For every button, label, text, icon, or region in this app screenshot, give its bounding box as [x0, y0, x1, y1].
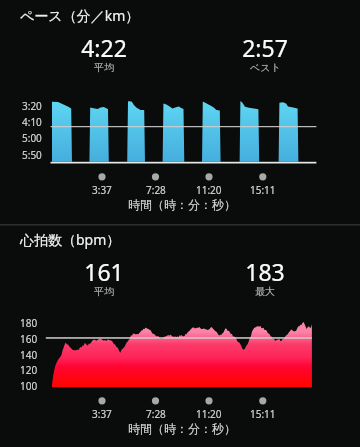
- staticText: 7:28: [146, 407, 166, 421]
- staticText: 3:20: [22, 99, 42, 113]
- staticText: 161: [84, 256, 124, 287]
- staticText: 160: [20, 332, 38, 346]
- staticText: 時間（時：分：秒）: [128, 421, 236, 436]
- staticText: 平均: [94, 285, 114, 298]
- staticText: 180: [20, 316, 38, 330]
- staticText: 4:10: [22, 115, 42, 129]
- staticText: 15:11: [250, 407, 276, 421]
- staticText: 120: [20, 363, 38, 377]
- staticText: 5:50: [22, 148, 42, 162]
- staticText: 15:11: [250, 183, 276, 197]
- button[interactable]: 4:22: [44, 32, 164, 76]
- staticText: 3:37: [92, 407, 112, 421]
- staticText: 平均: [94, 61, 114, 74]
- staticText: 心拍数（bpm）: [20, 230, 121, 249]
- staticText: 3:37: [92, 183, 112, 197]
- button[interactable]: 2:57: [205, 32, 325, 76]
- staticText: 140: [20, 348, 38, 362]
- button[interactable]: 161: [44, 256, 164, 300]
- staticText: ペース（分／km）: [20, 6, 140, 25]
- staticText: 11:20: [196, 183, 222, 197]
- staticText: 100: [20, 379, 38, 393]
- staticText: 183: [245, 256, 285, 287]
- staticText: 2:57: [242, 32, 288, 63]
- button[interactable]: 183: [205, 256, 325, 300]
- staticText: 最大: [255, 285, 275, 298]
- staticText: 4:22: [81, 32, 127, 63]
- staticText: 5:00: [22, 131, 42, 145]
- staticText: ベスト: [250, 61, 281, 74]
- staticText: 11:20: [196, 407, 222, 421]
- staticText: 7:28: [146, 183, 166, 197]
- staticText: 時間（時：分：秒）: [128, 197, 236, 212]
